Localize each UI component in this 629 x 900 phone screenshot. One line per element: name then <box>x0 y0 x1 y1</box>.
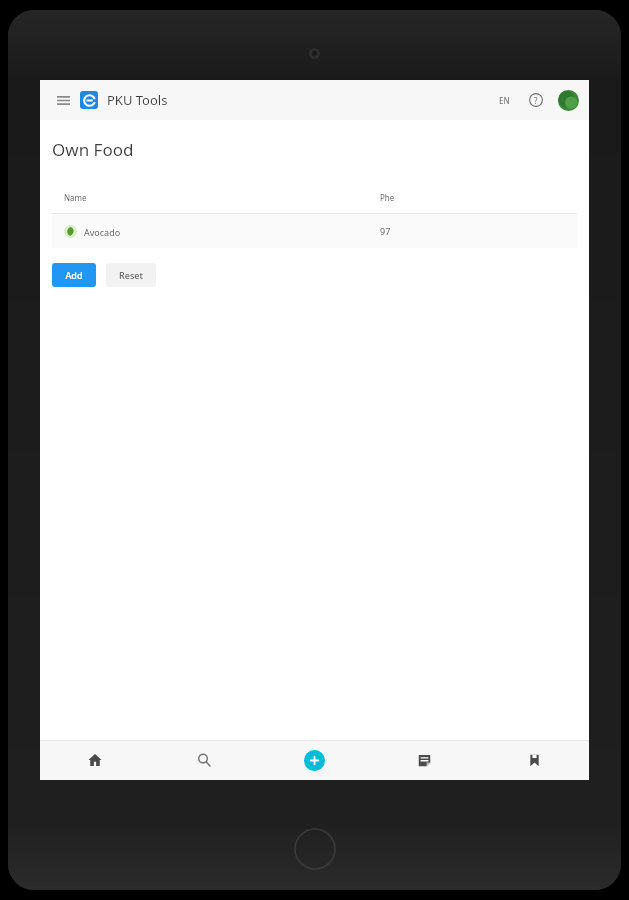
staticText: Name <box>64 192 380 203</box>
button[interactable]: Home <box>40 740 149 780</box>
button[interactable]: Add entry <box>259 740 369 780</box>
button[interactable]: Avocado <box>52 214 577 248</box>
staticText: PKU Tools <box>107 91 168 109</box>
button[interactable]: PKU Tools logo <box>80 91 98 109</box>
staticText: Reset <box>119 269 143 281</box>
button[interactable]: Open navigation menu <box>50 87 76 113</box>
staticText: Phe <box>380 192 577 203</box>
button[interactable]: Reset <box>106 263 156 287</box>
staticText: EN <box>499 95 510 106</box>
button[interactable]: Add <box>52 263 96 287</box>
staticText: ? <box>534 95 538 106</box>
staticText: Own Food <box>52 138 134 161</box>
button[interactable]: Saved <box>479 740 589 780</box>
button[interactable]: Notes <box>369 740 479 780</box>
button[interactable]: EN <box>494 89 515 112</box>
button[interactable]: Account <box>558 90 579 111</box>
button[interactable]: Search <box>149 740 259 780</box>
staticText: 97 <box>380 225 577 237</box>
staticText: Avocado <box>84 226 121 238</box>
button[interactable]: Help <box>525 89 547 111</box>
staticText: Add <box>65 269 83 281</box>
